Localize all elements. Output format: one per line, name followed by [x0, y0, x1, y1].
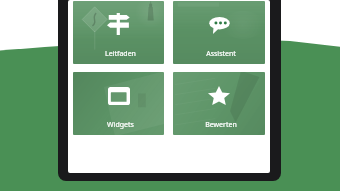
staticText: Leitfaden [75, 49, 164, 59]
staticText: Bewerten [175, 120, 265, 130]
button[interactable]: Widgets [73, 72, 164, 135]
button[interactable]: Assistent [173, 1, 265, 64]
button[interactable]: Leitfaden [73, 1, 164, 64]
button[interactable]: Bewerten [173, 72, 265, 135]
staticText: Assistent [175, 49, 265, 59]
staticText: Widgets [75, 120, 164, 130]
